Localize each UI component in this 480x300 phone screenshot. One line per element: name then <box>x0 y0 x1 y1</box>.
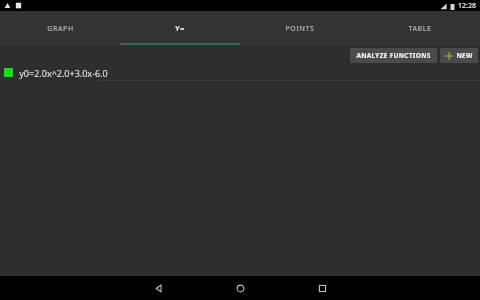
staticText: NEW <box>456 51 473 60</box>
button[interactable]: GRAPH <box>0 11 120 45</box>
staticText: GRAPH <box>47 24 74 34</box>
staticText: POINTS <box>285 24 315 34</box>
button[interactable]: Back <box>148 278 168 298</box>
button[interactable]: Home <box>230 278 250 298</box>
button[interactable]: POINTS <box>240 11 360 45</box>
staticText: 12:28 <box>458 1 476 11</box>
staticText: Y= <box>175 24 185 34</box>
button[interactable]: ANALYZE FUNCTIONS <box>350 48 437 63</box>
button[interactable]: Recent apps <box>312 278 332 298</box>
button[interactable]: TABLE <box>360 11 480 45</box>
staticText: TABLE <box>408 24 432 34</box>
button[interactable]: y0=2.0x^2.0+3.0x-6.0 <box>0 65 480 80</box>
button[interactable]: NEW <box>440 48 478 63</box>
staticText: ANALYZE FUNCTIONS <box>356 51 431 60</box>
staticText: y0=2.0x^2.0+3.0x-6.0 <box>19 67 108 79</box>
button[interactable]: Y= <box>120 11 240 45</box>
